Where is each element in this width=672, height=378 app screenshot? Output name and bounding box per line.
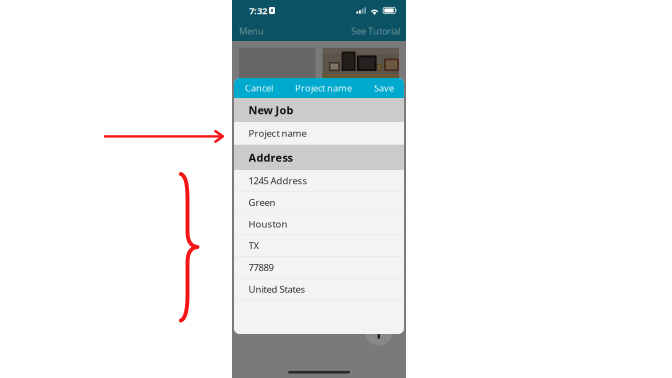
staticText: TX [248, 239, 259, 252]
button[interactable]: Green [234, 192, 404, 213]
staticText: Cancel [245, 82, 273, 94]
staticText: See Tutorial [351, 25, 400, 37]
button[interactable]: Save [368, 78, 404, 98]
staticText: Project name [248, 127, 306, 140]
staticText: Menu [239, 25, 264, 37]
button[interactable]: Cancel [234, 78, 279, 98]
staticText: Address [248, 150, 292, 165]
button[interactable]: TX [234, 235, 404, 257]
button[interactable]: Houston [234, 213, 404, 235]
staticText: 1245 Address [248, 174, 307, 187]
staticText: Houston [248, 217, 287, 230]
button[interactable]: United States [234, 278, 404, 300]
button[interactable]: 77889 [234, 257, 404, 278]
button[interactable]: Project name [234, 122, 404, 145]
button[interactable]: See Tutorial [345, 21, 406, 41]
staticText: Project name [295, 82, 352, 94]
staticText: New Job [248, 103, 293, 117]
staticText: United States [248, 283, 305, 295]
staticText: 7:32 [249, 4, 267, 17]
button[interactable]: Menu [232, 21, 270, 41]
staticText: Green [248, 196, 275, 209]
staticText: 77889 [248, 261, 273, 274]
button[interactable]: 1245 Address [234, 170, 404, 192]
button[interactable]: Add job [365, 318, 392, 345]
staticText: Save [374, 82, 394, 94]
